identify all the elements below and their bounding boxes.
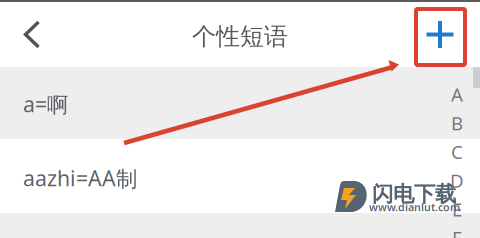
staticText: 个性短语	[192, 22, 288, 51]
staticText: 闪电下载	[372, 181, 456, 207]
button[interactable]: A	[444, 80, 470, 109]
staticText: F	[452, 225, 462, 238]
button[interactable]: D	[444, 166, 470, 195]
button[interactable]: C	[444, 137, 470, 166]
button[interactable]: F	[444, 223, 470, 238]
staticText: www.dianlut.com	[369, 200, 460, 214]
staticText: B	[451, 111, 463, 135]
staticText: aazhi=AA制	[23, 164, 137, 192]
button[interactable]: Add	[414, 4, 466, 64]
button[interactable]: E	[444, 195, 470, 223]
button[interactable]: aazhi=AA制	[0, 139, 480, 213]
staticText: D	[450, 168, 464, 193]
button[interactable]: B	[444, 109, 470, 137]
staticText: C	[451, 139, 463, 164]
staticText: E	[452, 197, 462, 222]
button[interactable]: Back	[0, 2, 64, 66]
button[interactable]: a=啊	[0, 67, 480, 139]
staticText: A	[451, 82, 463, 107]
staticText: a=啊	[23, 90, 68, 118]
